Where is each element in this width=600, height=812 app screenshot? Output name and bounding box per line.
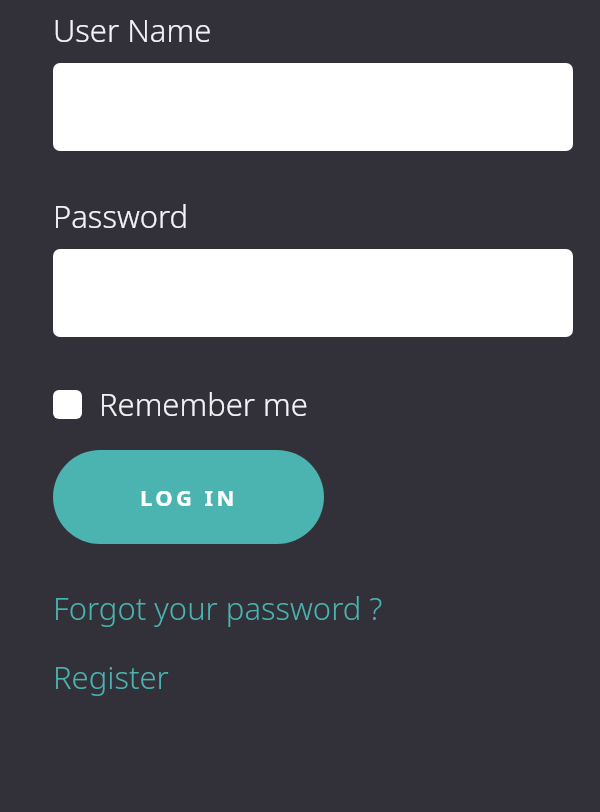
staticText: Password [53, 195, 189, 237]
staticText: LOG IN [140, 482, 238, 512]
button[interactable]: Remember me [53, 383, 308, 425]
staticText: Remember me [99, 383, 308, 425]
button[interactable]: Text input field [53, 63, 573, 151]
button[interactable]: LOG IN [53, 450, 324, 544]
button[interactable]: Text input field [53, 249, 573, 337]
button[interactable]: Forgot your password ? [53, 587, 383, 629]
button[interactable]: Register [53, 656, 169, 698]
staticText: User Name [53, 9, 212, 51]
